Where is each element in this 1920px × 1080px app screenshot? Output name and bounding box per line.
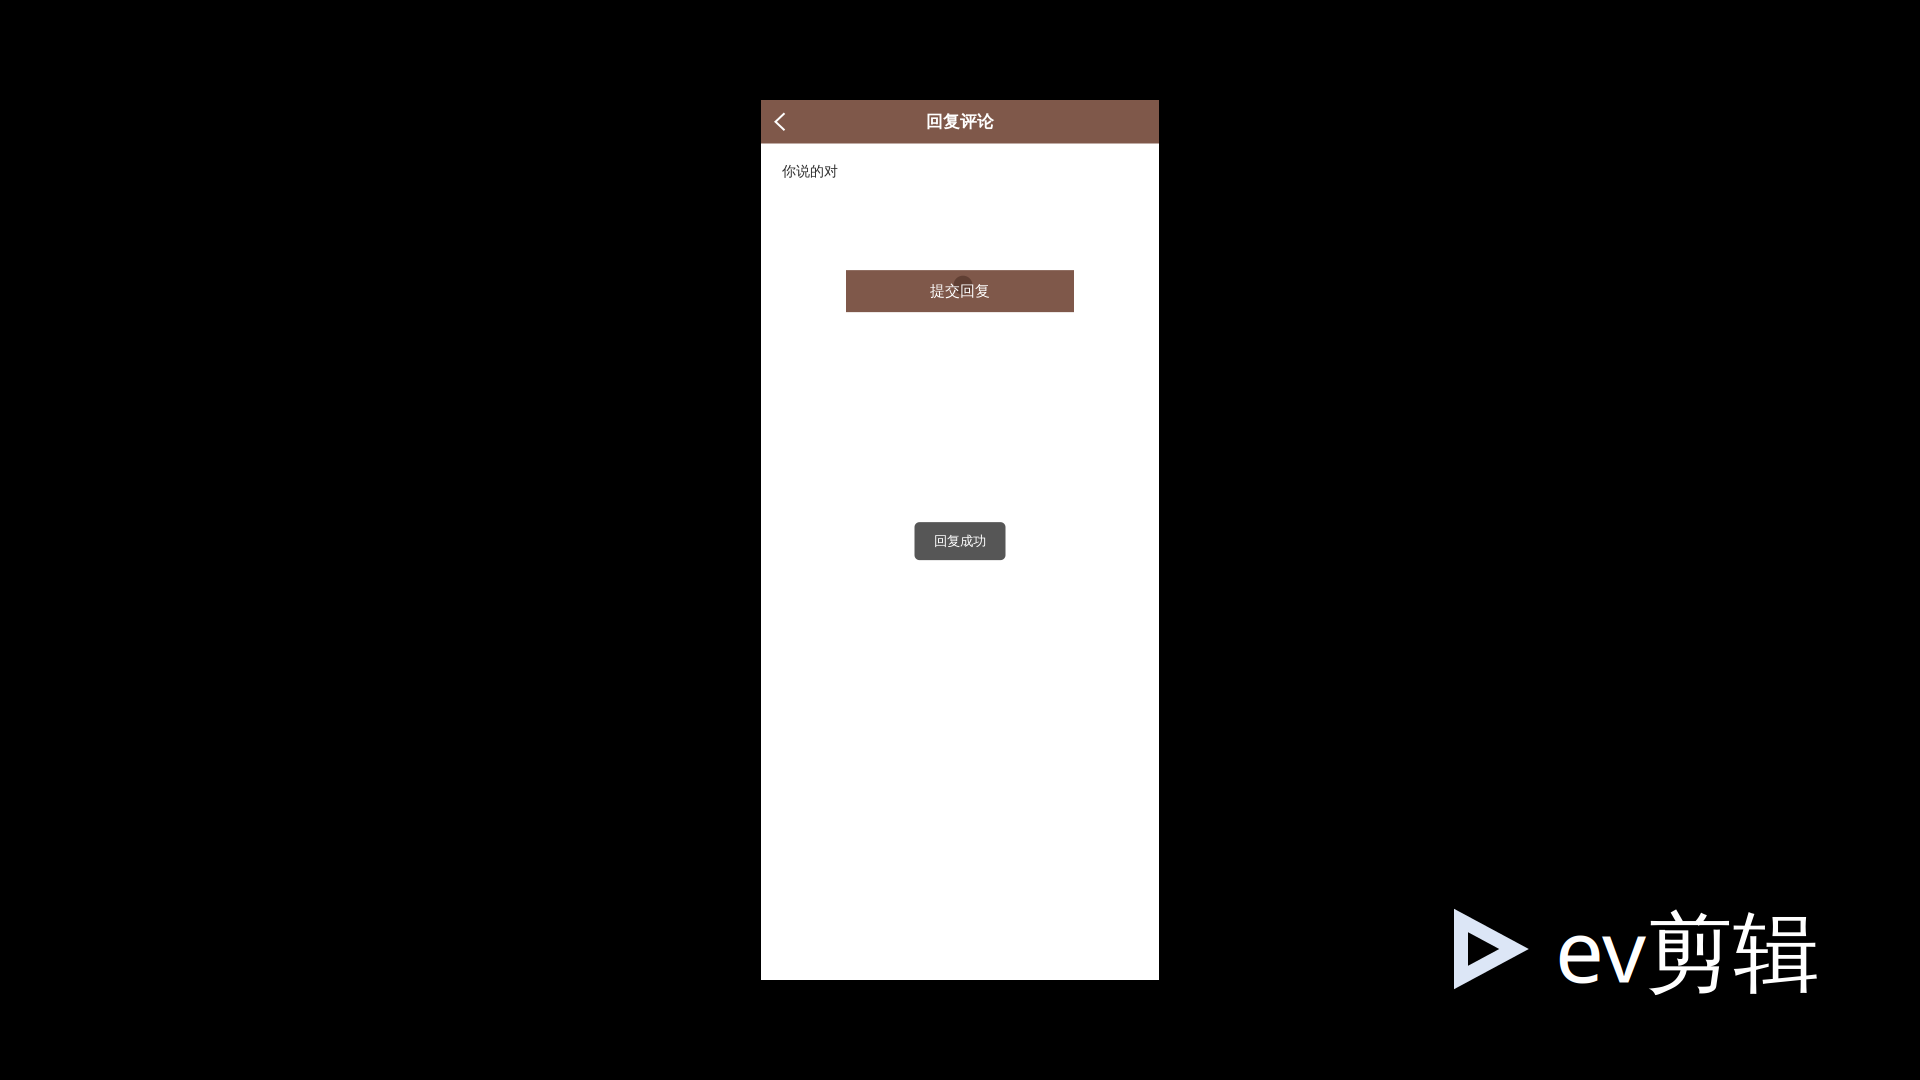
staticText: ev剪辑 [1555,890,1820,1008]
staticText: 你说的对 [782,162,838,180]
staticText: 提交回复 [930,282,990,300]
staticText: 回复成功 [934,533,986,549]
staticText: 回复评论 [926,111,994,132]
button[interactable]: 提交回复 [846,270,1074,312]
button[interactable]: 返回 [761,100,799,143]
